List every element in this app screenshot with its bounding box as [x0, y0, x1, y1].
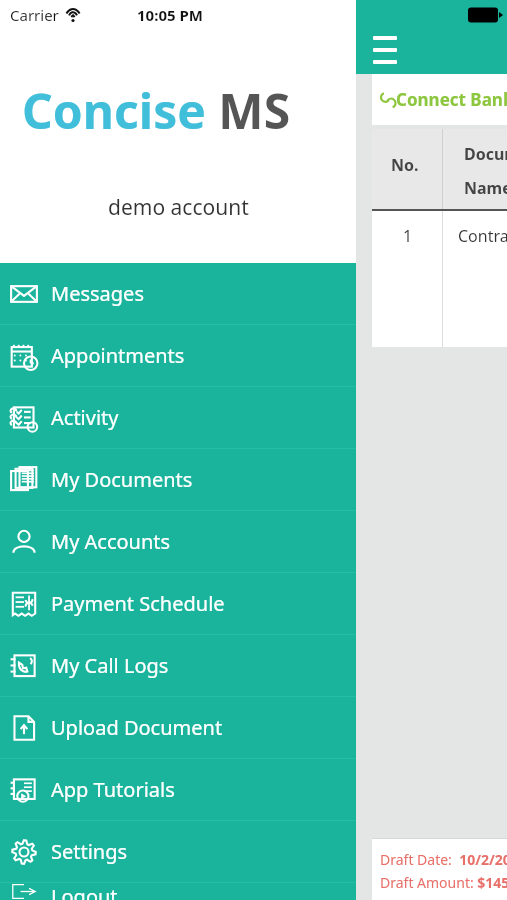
staticText: Appointments	[51, 342, 185, 369]
button[interactable]: Appointments	[0, 325, 356, 386]
staticText: Contract	[458, 225, 507, 247]
button[interactable]: My Accounts	[0, 511, 356, 572]
staticText: Upload Document	[51, 714, 223, 741]
button[interactable]: Upload Document	[0, 697, 356, 758]
button[interactable]: Messages	[0, 263, 356, 324]
staticText: Messages	[51, 280, 144, 307]
button[interactable]: Logout	[0, 883, 356, 900]
staticText: Connect Bank	[396, 88, 507, 111]
button[interactable]: My Documents	[0, 449, 356, 510]
staticText: My Documents	[51, 466, 193, 493]
staticText: Carrier	[10, 5, 59, 25]
staticText: Document	[464, 143, 507, 165]
staticText: App Tutorials	[51, 776, 175, 803]
button[interactable]: 1	[372, 211, 507, 347]
staticText: Concise MS	[22, 78, 291, 143]
staticText: Logout	[51, 883, 118, 900]
staticText: Draft Amount: $145.00	[380, 873, 507, 892]
staticText: My Accounts	[51, 528, 171, 555]
staticText: Name	[464, 177, 507, 199]
staticText: Draft Date: 10/2/2024	[380, 850, 507, 869]
button[interactable]: Settings	[0, 821, 356, 882]
button[interactable]: My Call Logs	[0, 635, 356, 696]
staticText: My Call Logs	[51, 652, 169, 679]
staticText: Settings	[51, 838, 128, 865]
button[interactable]: Activity	[0, 387, 356, 448]
staticText: No.	[391, 154, 419, 176]
button[interactable]: Open navigation menu	[365, 32, 405, 68]
button[interactable]: App Tutorials	[0, 759, 356, 820]
staticText: 1	[403, 225, 413, 247]
button[interactable]: Payment Schedule	[0, 573, 356, 634]
staticText: Payment Schedule	[51, 590, 225, 617]
button[interactable]: Connect Bank	[380, 88, 507, 111]
staticText: 10:05 PM	[137, 5, 203, 25]
staticText: demo account	[108, 193, 249, 222]
staticText: Activity	[51, 404, 119, 431]
